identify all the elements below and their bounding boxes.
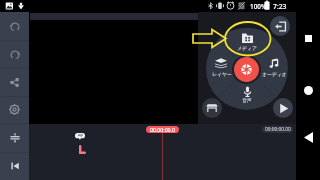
- staticText: レイヤー: [212, 71, 232, 77]
- button[interactable]: Recents: [296, 26, 320, 50]
- button[interactable]: Back: [296, 125, 320, 149]
- button[interactable]: Undo: [0, 13, 29, 40]
- button[interactable]: Expand timeline: [0, 124, 29, 152]
- button[interactable]: Redo: [0, 41, 29, 68]
- button[interactable]: Asset Store: [202, 98, 222, 118]
- button[interactable]: Skip to start: [0, 152, 29, 180]
- button[interactable]: Audio: [260, 55, 288, 77]
- button[interactable]: Home: [296, 78, 320, 102]
- staticText: メディア: [237, 45, 257, 51]
- staticText: 7:23: [273, 2, 287, 11]
- button[interactable]: Voice: [233, 82, 261, 104]
- staticText: 00:00:00.0: [150, 126, 175, 133]
- staticText: 100%: [250, 2, 267, 11]
- button[interactable]: Share: [0, 68, 29, 96]
- button[interactable]: Capture: [234, 57, 259, 82]
- button[interactable]: Export: [270, 16, 290, 36]
- button[interactable]: Total duration: [262, 126, 293, 133]
- staticText: 音声: [242, 97, 252, 103]
- button[interactable]: Play: [273, 98, 293, 118]
- button[interactable]: Settings: [0, 96, 29, 123]
- staticText: 00:00:00.00: [265, 126, 291, 133]
- button[interactable]: Media: [233, 29, 261, 51]
- button[interactable]: Layer: [207, 54, 235, 76]
- button[interactable]: Current time: [146, 126, 179, 133]
- staticText: オーディオ: [262, 71, 287, 77]
